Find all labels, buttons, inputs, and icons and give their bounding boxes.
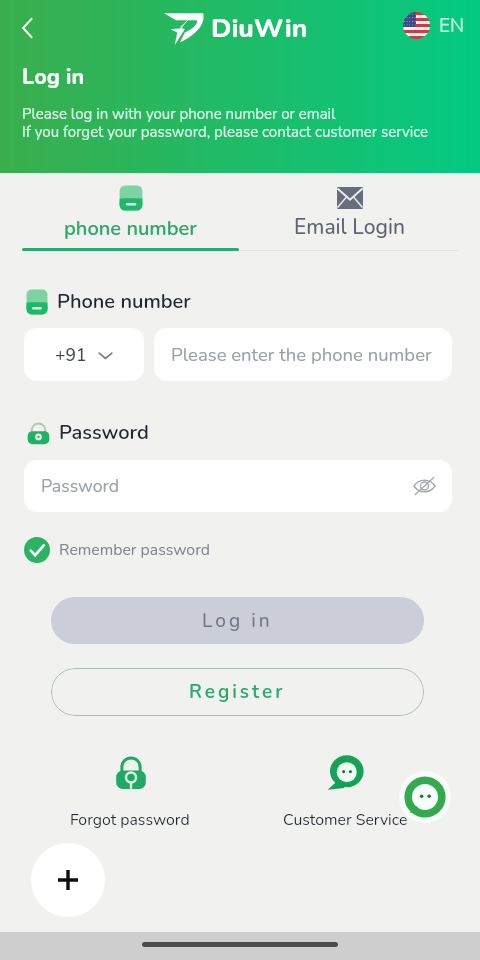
- button[interactable]: [101, 752, 161, 794]
- button[interactable]: Back: [6, 7, 48, 49]
- staticText: Log in: [22, 62, 85, 91]
- button[interactable]: [283, 750, 409, 830]
- staticText: Password: [59, 419, 149, 446]
- staticText: Remember password: [59, 539, 210, 561]
- staticText: Customer Service: [283, 809, 408, 831]
- staticText: Password: [41, 474, 120, 498]
- staticText: If you forget your password, please cont…: [22, 122, 429, 142]
- button[interactable]: phone number: [22, 180, 239, 252]
- staticText: Forgot password: [70, 809, 190, 831]
- staticText: EN: [439, 13, 465, 39]
- button[interactable]: Remember password: [24, 537, 210, 563]
- button[interactable]: Please enter the phone number: [154, 328, 452, 381]
- button[interactable]: [70, 750, 192, 830]
- staticText: DiuWin: [211, 10, 308, 46]
- staticText: phone number: [64, 215, 197, 242]
- staticText: Phone number: [57, 288, 191, 315]
- button[interactable]: Password: [24, 460, 452, 512]
- button[interactable]: EN: [403, 12, 465, 39]
- button[interactable]: Add: [31, 843, 105, 917]
- button[interactable]: Email Login: [241, 180, 458, 252]
- staticText: Please log in with your phone number or …: [22, 104, 336, 124]
- button[interactable]: Customer service chat: [399, 771, 451, 823]
- button[interactable]: Show password: [407, 469, 441, 503]
- button[interactable]: Log in: [51, 597, 424, 644]
- staticText: Please enter the phone number: [171, 342, 432, 367]
- staticText: Log in: [202, 608, 273, 634]
- button[interactable]: +91: [24, 328, 144, 381]
- staticText: +91: [55, 343, 87, 367]
- staticText: Email Login: [294, 213, 405, 242]
- button[interactable]: Register: [51, 668, 424, 716]
- staticText: Register: [189, 679, 286, 705]
